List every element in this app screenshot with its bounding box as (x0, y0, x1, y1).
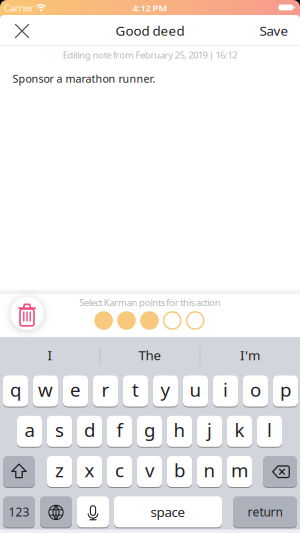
button[interactable]: space (114, 496, 222, 528)
staticText: e (70, 377, 81, 402)
staticText: j (207, 417, 212, 442)
staticText: Carrier (4, 2, 34, 14)
button[interactable]: c (107, 455, 132, 487)
button[interactable]: j (197, 415, 222, 447)
button[interactable]: s (47, 415, 72, 447)
staticText: w (38, 377, 53, 402)
staticText: x (84, 458, 94, 482)
button[interactable]: h (167, 415, 192, 447)
staticText: n (203, 458, 215, 482)
staticText: Good deed (115, 22, 184, 39)
staticText: Sponsor a marathon runner. (12, 71, 155, 86)
staticText: v (145, 458, 154, 482)
staticText: The (138, 346, 161, 364)
button[interactable]: Save (254, 16, 294, 44)
button[interactable]: 4 points (162, 310, 182, 330)
button[interactable]: Delete note (10, 297, 43, 330)
button[interactable]: Close (7, 16, 37, 46)
staticText: h (173, 417, 185, 442)
button[interactable]: w (33, 375, 58, 407)
staticText: c (115, 458, 124, 482)
staticText: Select Karman points for this action (79, 296, 221, 309)
staticText: y (160, 377, 170, 402)
button[interactable]: l (257, 415, 282, 447)
staticText: s (55, 417, 64, 442)
button[interactable]: e (63, 375, 88, 407)
button[interactable]: Next keyboard (40, 496, 72, 528)
staticText: q (10, 377, 21, 402)
button[interactable]: u (183, 375, 208, 407)
staticText: I (47, 346, 52, 364)
button[interactable]: y (153, 375, 178, 407)
button[interactable]: m (227, 455, 252, 487)
button[interactable]: n (197, 455, 222, 487)
button[interactable]: Shift (3, 455, 35, 487)
staticText: g (144, 417, 155, 442)
staticText: a (24, 417, 34, 442)
button[interactable]: f (107, 415, 132, 447)
button[interactable]: 5 points (185, 310, 205, 330)
staticText: I'm (240, 346, 260, 364)
button[interactable]: v (137, 455, 162, 487)
staticText: r (101, 377, 109, 402)
button[interactable]: I (2, 338, 98, 372)
staticText: z (55, 458, 64, 482)
button[interactable]: I'm (202, 338, 298, 372)
button[interactable]: The (102, 338, 198, 372)
button[interactable]: i (213, 375, 238, 407)
staticText: u (189, 377, 201, 402)
button[interactable]: q (3, 375, 28, 407)
staticText: k (234, 417, 244, 442)
button[interactable]: Dictate (77, 496, 109, 528)
button[interactable]: d (77, 415, 102, 447)
staticText: l (267, 417, 272, 442)
button[interactable]: p (273, 375, 298, 407)
staticText: f (116, 417, 122, 442)
button[interactable]: 3 points (139, 310, 159, 330)
button[interactable]: b (167, 455, 192, 487)
staticText: t (132, 377, 139, 402)
button[interactable]: t (123, 375, 148, 407)
staticText: d (84, 417, 95, 442)
staticText: return (247, 504, 282, 520)
staticText: space (150, 503, 185, 521)
staticText: 123 (8, 504, 29, 520)
button[interactable]: a (17, 415, 42, 447)
button[interactable]: k (227, 415, 252, 447)
button[interactable]: x (77, 455, 102, 487)
button[interactable]: 123 (3, 496, 35, 528)
button[interactable]: g (137, 415, 162, 447)
staticText: i (223, 377, 228, 402)
button[interactable]: r (93, 375, 118, 407)
staticText: Save (259, 22, 288, 39)
button[interactable]: o (243, 375, 268, 407)
button[interactable]: Delete (263, 455, 297, 487)
staticText: p (280, 377, 291, 402)
staticText: o (250, 377, 261, 402)
button[interactable]: z (47, 455, 72, 487)
staticText: Editing note from February 25, 2019 | 16… (63, 49, 237, 61)
button[interactable]: return (233, 496, 297, 528)
button[interactable]: 2 points (116, 310, 136, 330)
staticText: 4:12 PM (132, 2, 167, 14)
staticText: m (231, 458, 248, 482)
staticText: b (174, 458, 185, 482)
button[interactable]: 1 point (94, 310, 114, 330)
